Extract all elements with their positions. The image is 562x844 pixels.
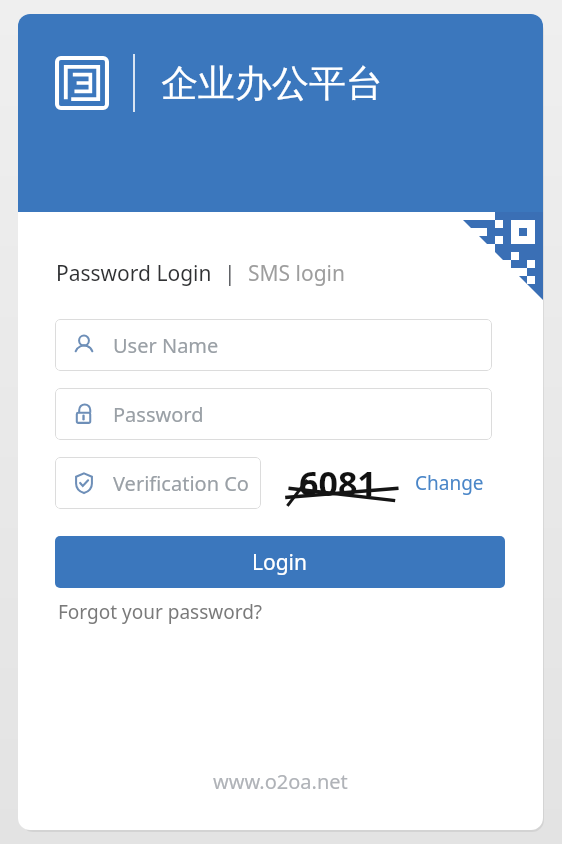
staticText: SMS login <box>248 259 345 288</box>
button[interactable]: Change <box>413 465 486 501</box>
button[interactable]: QR code login <box>455 212 543 300</box>
staticText: User Name <box>113 332 219 359</box>
staticText: Change <box>415 470 484 496</box>
button[interactable]: Verification Co <box>55 457 261 509</box>
button[interactable]: Login <box>55 536 505 588</box>
button[interactable]: Password Login <box>55 256 213 291</box>
button[interactable]: 6081 <box>283 457 393 509</box>
staticText: Forgot your password? <box>58 599 263 625</box>
staticText: 企业办公平台 <box>161 60 383 107</box>
staticText: 6081 <box>299 460 377 506</box>
staticText: Verification Co <box>113 470 249 497</box>
staticText: | <box>213 259 247 288</box>
staticText: Password <box>113 401 204 428</box>
staticText: www.o2oa.net <box>213 768 348 795</box>
button[interactable]: Password <box>55 388 492 440</box>
button[interactable]: SMS login <box>247 256 346 291</box>
button[interactable]: Forgot your password? <box>56 594 265 630</box>
staticText: Login <box>252 548 308 577</box>
button[interactable]: User Name <box>55 319 492 371</box>
staticText: Password Login <box>56 259 212 288</box>
